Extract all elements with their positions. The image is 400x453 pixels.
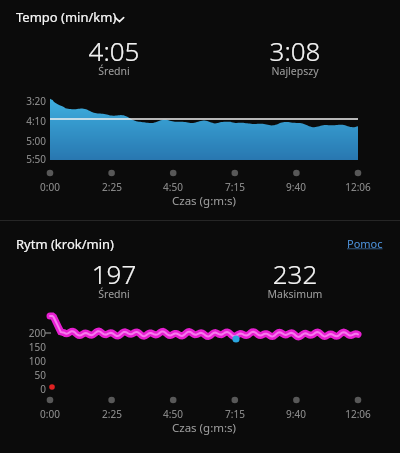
staticText: 7:15 xyxy=(210,180,260,194)
staticText: 0:00 xyxy=(25,180,75,194)
staticText: 50 xyxy=(8,368,46,382)
staticText: 12:06 xyxy=(333,180,383,194)
staticText: 5:00 xyxy=(8,134,46,148)
button[interactable]: Pomoc xyxy=(344,233,386,254)
staticText: Średni xyxy=(44,64,184,78)
staticText: 3:20 xyxy=(8,94,46,108)
staticText: 4:05 xyxy=(44,33,184,68)
staticText: 9:40 xyxy=(271,407,321,421)
staticText: 4:10 xyxy=(8,114,46,128)
staticText: Pomoc xyxy=(347,236,383,251)
button[interactable]: Tempo (min/km) xyxy=(14,5,138,29)
staticText: 0:00 xyxy=(25,407,75,421)
staticText: 200 xyxy=(8,326,46,340)
staticText: 0 xyxy=(8,382,46,396)
staticText: Tempo (min/km) xyxy=(16,8,117,26)
staticText: Maksimum xyxy=(225,287,365,301)
staticText: 150 xyxy=(8,340,46,354)
staticText: 197 xyxy=(44,256,184,291)
staticText: Najlepszy xyxy=(225,64,365,78)
staticText: 12:06 xyxy=(333,407,383,421)
staticText: 2:25 xyxy=(87,407,137,421)
staticText: Czas (g:m:s) xyxy=(144,193,264,209)
button[interactable]: Rytm (krok/min) xyxy=(14,232,116,256)
staticText: 4:50 xyxy=(148,180,198,194)
staticText: Średni xyxy=(44,287,184,301)
staticText: 7:15 xyxy=(210,407,260,421)
staticText: 3:08 xyxy=(225,33,365,68)
staticText: 4:50 xyxy=(148,407,198,421)
staticText: 9:40 xyxy=(271,180,321,194)
staticText: Rytm (krok/min) xyxy=(16,235,114,253)
staticText: 232 xyxy=(225,256,365,291)
staticText: Czas (g:m:s) xyxy=(144,420,264,436)
staticText: 100 xyxy=(8,354,46,368)
staticText: 2:25 xyxy=(87,180,137,194)
staticText: 5:50 xyxy=(8,152,46,166)
